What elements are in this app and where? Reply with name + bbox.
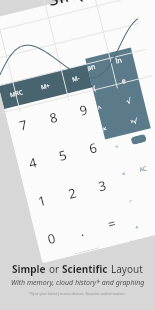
- button[interactable]: =: [91, 200, 131, 246]
- button[interactable]: ln: [102, 48, 136, 74]
- staticText: sin(x): [44, 0, 103, 13]
- staticText: 7: [17, 115, 30, 135]
- button[interactable]: ×: [100, 115, 122, 139]
- staticText: Layout: [111, 262, 143, 276]
- staticText: ln: [115, 55, 124, 66]
- staticText: +: [134, 223, 140, 232]
- button[interactable]: 8: [33, 94, 73, 140]
- button[interactable]: tan: [85, 55, 106, 78]
- button[interactable]: ˣ√: [117, 108, 151, 135]
- staticText: ×: [101, 124, 109, 135]
- staticText: tan: [86, 62, 97, 73]
- staticText: √: [126, 97, 133, 106]
- staticText: ^: [96, 103, 104, 114]
- staticText: ˣ√: [130, 116, 139, 128]
- staticText: M+: [40, 81, 51, 91]
- staticText: 4: [27, 153, 39, 172]
- staticText: Simple: [12, 262, 49, 276]
- staticText: MRC: [9, 88, 24, 99]
- staticText: AC: [139, 164, 148, 174]
- staticText: 3: [96, 176, 108, 195]
- staticText: −: [128, 197, 134, 205]
- button[interactable]: 2: [52, 170, 91, 215]
- button[interactable]: (: [90, 74, 111, 99]
- button[interactable]: e: [106, 67, 141, 95]
- staticText: .: [78, 222, 86, 240]
- button[interactable]: ×: [111, 158, 137, 190]
- button[interactable]: ^: [95, 95, 117, 119]
- staticText: 6: [87, 138, 99, 157]
- button[interactable]: M-: [58, 64, 93, 94]
- staticText: 2: [66, 183, 78, 203]
- button[interactable]: [124, 126, 150, 158]
- button[interactable]: −: [118, 185, 144, 217]
- button[interactable]: +: [124, 212, 150, 241]
- button[interactable]: 5: [43, 132, 82, 178]
- staticText: ×: [121, 170, 127, 178]
- staticText: (: [92, 83, 98, 94]
- button[interactable]: √: [112, 87, 146, 115]
- button[interactable]: AC: [130, 153, 155, 185]
- staticText: Scientific: [62, 262, 111, 276]
- staticText: ÷: [114, 142, 120, 151]
- button[interactable]: [144, 207, 155, 237]
- button[interactable]: MRC: [0, 78, 33, 109]
- staticText: 8: [48, 108, 60, 127]
- button[interactable]: ÷: [104, 131, 130, 163]
- button[interactable]: 6: [73, 125, 112, 170]
- button[interactable]: Backspace: [130, 134, 147, 145]
- staticText: M-: [71, 74, 81, 84]
- staticText: e: [121, 76, 127, 87]
- button[interactable]: 9: [63, 87, 103, 132]
- staticText: =: [106, 214, 118, 233]
- staticText: *Sync your history across devices. Requi…: [29, 291, 126, 296]
- button[interactable]: 7: [4, 102, 43, 147]
- button[interactable]: 3: [82, 163, 122, 208]
- staticText: 9: [78, 100, 90, 120]
- staticText: 5: [57, 146, 69, 165]
- button[interactable]: M+: [27, 71, 63, 102]
- staticText: 1: [36, 191, 48, 210]
- button[interactable]: 4: [13, 140, 52, 185]
- staticText: With memory, cloud history* and graphing: [11, 278, 145, 288]
- button[interactable]: 1: [23, 178, 61, 223]
- button[interactable]: 0: [32, 215, 71, 260]
- staticText: 0: [46, 229, 58, 248]
- staticText: or: [49, 262, 62, 276]
- button[interactable]: .: [61, 208, 101, 253]
